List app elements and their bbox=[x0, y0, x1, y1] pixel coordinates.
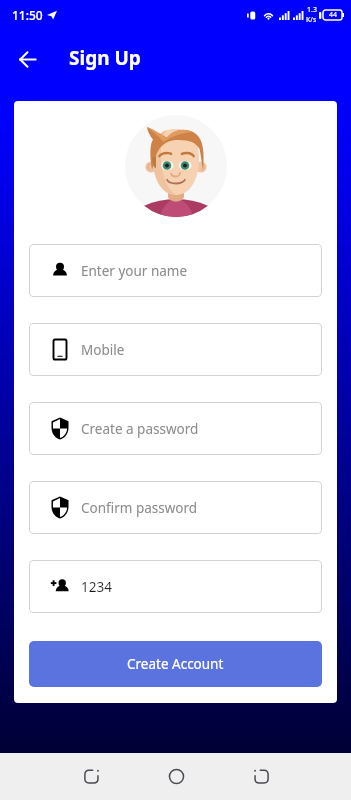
button[interactable]: Back bbox=[7, 39, 47, 79]
button[interactable]: Enter your name bbox=[29, 244, 322, 297]
staticText: Create a password bbox=[81, 420, 199, 438]
button[interactable]: Back bbox=[239, 754, 283, 798]
staticText: Enter your name bbox=[81, 262, 188, 280]
staticText: 1.3 bbox=[307, 5, 317, 15]
button[interactable]: Create a password bbox=[29, 402, 322, 455]
staticText: Create Account bbox=[127, 655, 224, 673]
staticText: Confirm password bbox=[81, 499, 198, 517]
button[interactable]: Create Account bbox=[29, 641, 322, 687]
staticText: Mobile bbox=[81, 341, 125, 359]
staticText: Sign Up bbox=[69, 45, 141, 71]
button[interactable]: Confirm password bbox=[29, 481, 322, 534]
button[interactable]: Mobile bbox=[29, 323, 322, 376]
staticText: 11:50 bbox=[12, 7, 43, 23]
button[interactable]: Recent apps bbox=[69, 754, 113, 798]
staticText: 1234 bbox=[81, 578, 112, 596]
button[interactable]: Home bbox=[154, 754, 198, 798]
button[interactable]: 1234 bbox=[29, 560, 322, 613]
staticText: K/s bbox=[306, 15, 317, 25]
staticText: 44 bbox=[329, 10, 338, 20]
